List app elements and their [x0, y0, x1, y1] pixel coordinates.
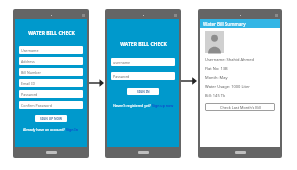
button[interactable]: SIGN UP NOW: [35, 115, 67, 122]
staticText: WATER BILL CHECK: [28, 30, 75, 37]
button[interactable]: Address: [19, 57, 83, 65]
staticText: Check Last Month's Bill: [220, 105, 261, 110]
button[interactable]: Sign In: [66, 127, 79, 132]
staticText: Water Bill Summary: [203, 21, 246, 27]
staticText: Month: May: [205, 75, 228, 80]
staticText: Password: [113, 74, 130, 79]
staticText: Already have an account?: [23, 127, 66, 132]
other: Next screen: [181, 74, 197, 88]
staticText: username: [113, 60, 131, 65]
button[interactable]: username: [111, 58, 175, 66]
button[interactable]: Bill Number: [19, 68, 83, 76]
button[interactable]: Home: [138, 151, 149, 154]
button[interactable]: Email ID: [19, 79, 83, 87]
staticText: Username: Shahid Ahmed: [205, 57, 254, 62]
other: Profile photo: [205, 31, 224, 53]
other: Next screen: [89, 76, 104, 90]
staticText: Password: [21, 92, 38, 97]
button[interactable]: Home: [235, 151, 246, 154]
staticText: WATER BILL CHECK: [120, 41, 167, 48]
button[interactable]: Check Last Month's Bill: [205, 103, 275, 111]
staticText: Confirm Password: [21, 103, 52, 108]
staticText: Water Usage: 1000 Liter: [205, 84, 250, 89]
staticText: Haven't registered yet?: [113, 103, 152, 108]
staticText: Address: [21, 59, 35, 64]
staticText: Bill Number: [21, 70, 42, 75]
staticText: Flat No: 13B: [205, 66, 228, 71]
button[interactable]: Sign up now: [152, 103, 174, 108]
button[interactable]: Password: [19, 90, 83, 98]
staticText: Email ID: [21, 81, 36, 86]
button[interactable]: Password: [111, 72, 175, 80]
staticText: SIGN UP NOW: [40, 117, 63, 121]
button[interactable]: Home: [46, 151, 57, 154]
staticText: Username: [21, 48, 39, 53]
staticText: SIGN IN: [137, 90, 150, 94]
button[interactable]: Confirm Password: [19, 101, 83, 109]
staticText: Bill: 145 Tk: [205, 93, 226, 98]
button[interactable]: SIGN IN: [127, 88, 159, 95]
button[interactable]: Username: [19, 46, 83, 54]
